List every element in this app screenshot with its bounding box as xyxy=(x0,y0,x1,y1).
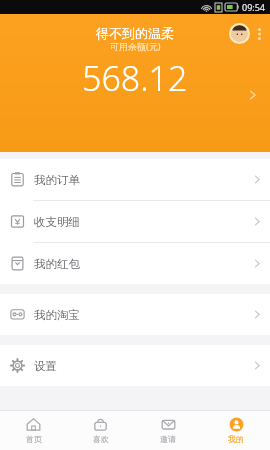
button[interactable]: More options xyxy=(253,24,265,44)
staticText: 得不到的温柔 xyxy=(96,25,174,41)
staticText: 设置 xyxy=(34,359,57,373)
staticText: 邀请 xyxy=(160,434,176,444)
button[interactable]: 设置 xyxy=(0,345,270,386)
staticText: 我的红包 xyxy=(34,257,80,271)
staticText: 喜欢 xyxy=(93,434,109,444)
button[interactable]: 喜欢 xyxy=(67,411,134,450)
button[interactable]: 我的 xyxy=(202,411,270,450)
staticText: 09:54 xyxy=(242,1,266,13)
button[interactable]: 我的红包 xyxy=(0,243,270,284)
button[interactable]: Balance details xyxy=(242,84,264,106)
staticText: 首页 xyxy=(26,434,42,444)
button[interactable]: 收支明细 xyxy=(0,201,270,242)
staticText: 收支明细 xyxy=(34,215,80,229)
staticText: 我的 xyxy=(228,434,244,444)
button[interactable]: 首页 xyxy=(0,411,67,450)
button[interactable]: 我的订单 xyxy=(0,159,270,200)
staticText: 我的淘宝 xyxy=(34,308,80,322)
staticText: 可用余额(元) xyxy=(110,40,161,52)
button[interactable]: Profile avatar xyxy=(229,23,250,44)
staticText: 我的订单 xyxy=(34,173,80,187)
button[interactable]: 我的淘宝 xyxy=(0,294,270,335)
button[interactable]: 邀请 xyxy=(134,411,202,450)
staticText: 568.12 xyxy=(82,55,188,101)
